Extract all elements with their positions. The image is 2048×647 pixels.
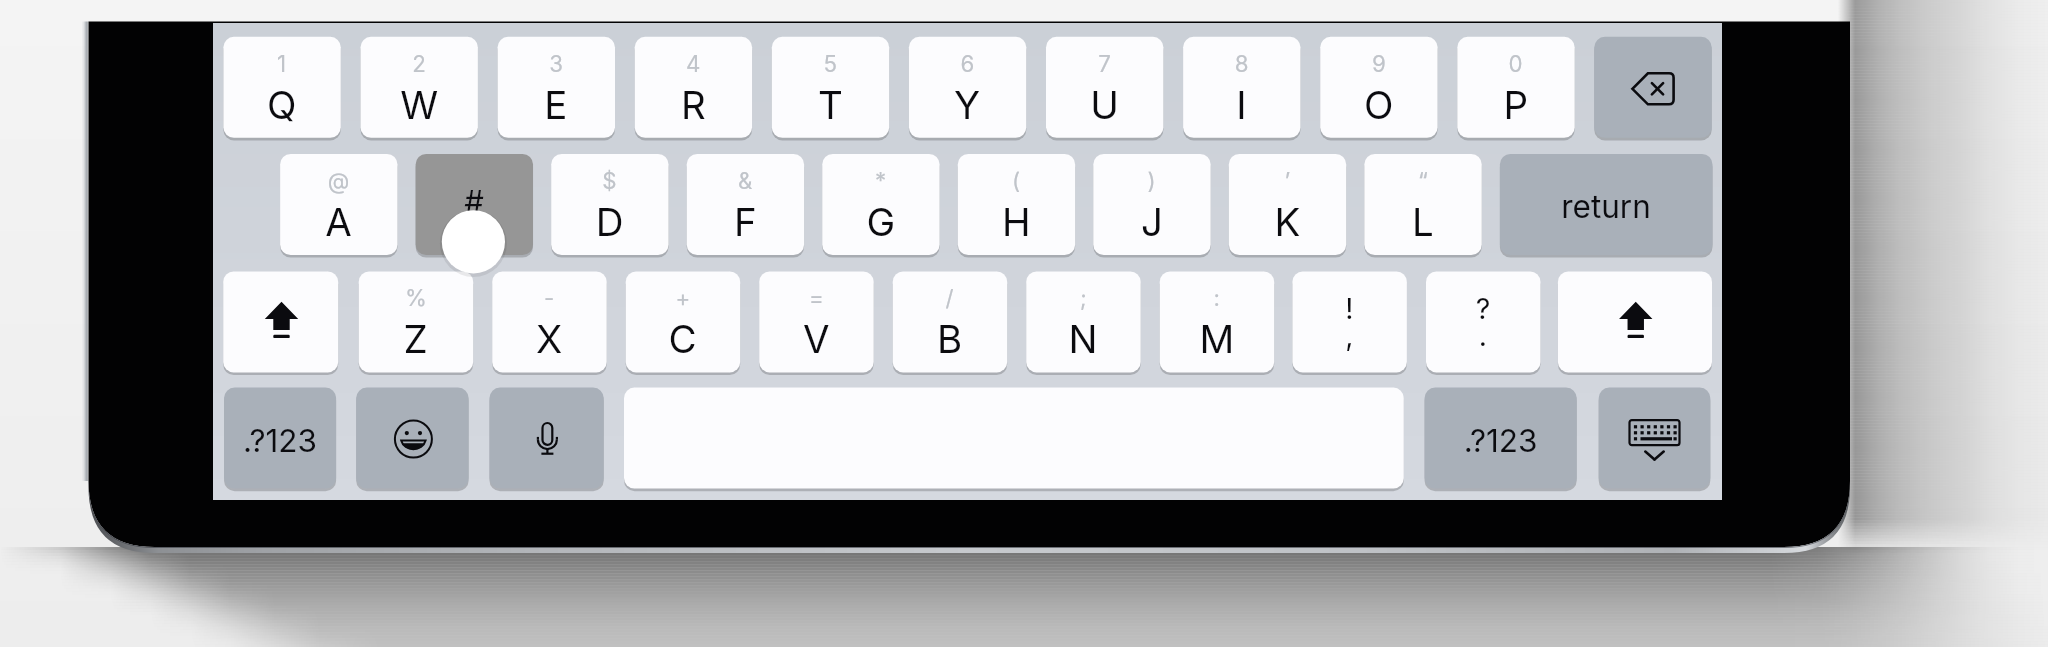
button[interactable]: W [361, 37, 478, 138]
button[interactable]: I [1183, 37, 1300, 138]
button[interactable]: R [635, 37, 752, 138]
button[interactable]: D [551, 154, 668, 255]
button[interactable]: P [1457, 37, 1574, 138]
button[interactable]: .?123 [224, 388, 336, 489]
button[interactable]: B [893, 271, 1008, 372]
button[interactable]: M [1160, 271, 1275, 372]
button[interactable]: L [1364, 154, 1481, 255]
button[interactable]: Emoji [356, 388, 468, 489]
button[interactable]: U [1046, 37, 1163, 138]
button[interactable]: E [498, 37, 615, 138]
button[interactable]: Hide keyboard [1599, 388, 1711, 489]
button[interactable]: T [772, 37, 889, 138]
button[interactable]: K [1229, 154, 1346, 255]
button[interactable]: Q [223, 37, 340, 138]
button[interactable]: X [492, 271, 607, 372]
button[interactable]: Z [359, 271, 474, 372]
button[interactable]: Dictate [490, 388, 604, 489]
button[interactable]: Backspace [1594, 37, 1711, 138]
button[interactable]: Space [624, 388, 1404, 489]
button[interactable]: V [759, 271, 874, 372]
button[interactable]: G [822, 154, 939, 255]
button[interactable]: N [1026, 271, 1141, 372]
button[interactable]: H [958, 154, 1075, 255]
button[interactable]: J [1093, 154, 1210, 255]
button[interactable]: F [687, 154, 804, 255]
button[interactable]: A [280, 154, 397, 255]
button[interactable]: S [416, 154, 533, 255]
button[interactable]: Shift [223, 271, 338, 372]
button[interactable]: return [1500, 154, 1713, 255]
button[interactable]: .?123 [1425, 388, 1577, 489]
button[interactable]: O [1320, 37, 1437, 138]
button[interactable] [1426, 271, 1541, 372]
button[interactable]: Y [909, 37, 1026, 138]
button[interactable] [1292, 271, 1407, 372]
button[interactable]: Shift [1558, 271, 1712, 372]
button[interactable]: C [626, 271, 741, 372]
